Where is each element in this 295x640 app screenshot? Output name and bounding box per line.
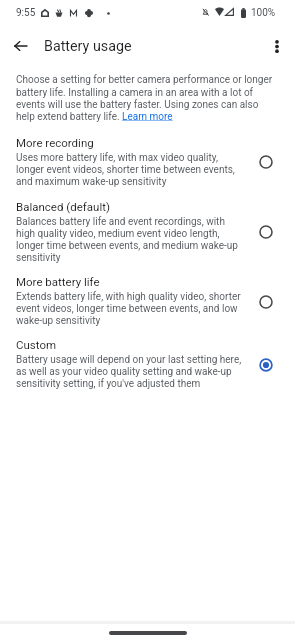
button[interactable]: Custom xyxy=(0,338,295,389)
staticText: Uses more battery life, with max video q… xyxy=(16,152,244,188)
staticText: More recording xyxy=(16,136,244,149)
staticText: Custom xyxy=(16,338,244,351)
staticText: More battery life xyxy=(16,275,244,288)
staticText: Choose a setting for better camera perfo… xyxy=(16,74,275,122)
staticText: 100% xyxy=(251,7,276,19)
staticText: Extends battery life, with high quality … xyxy=(16,291,244,327)
staticText: Battery usage xyxy=(44,38,132,55)
button[interactable]: Balanced (default) xyxy=(0,200,295,263)
staticText: Balanced (default) xyxy=(16,200,244,213)
staticText: Battery usage will depend on your last s… xyxy=(16,354,244,390)
button[interactable]: More battery life xyxy=(0,275,295,326)
button[interactable]: Navigate up xyxy=(5,31,35,61)
button[interactable]: More options xyxy=(263,32,291,60)
staticText: Balances battery life and event recordin… xyxy=(16,216,244,264)
staticText: 9:55 xyxy=(16,7,36,19)
button[interactable]: More recording xyxy=(0,136,295,187)
